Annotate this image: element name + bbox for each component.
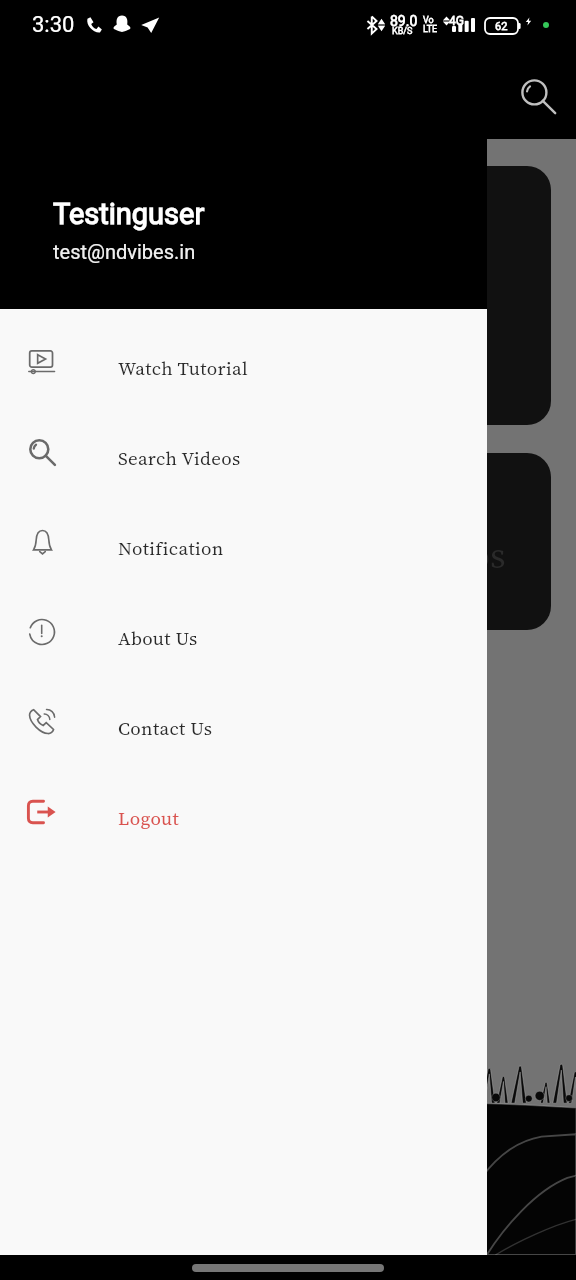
button[interactable]: About Us [0,587,487,677]
button[interactable]: Watch Tutorial [0,317,487,407]
staticText: Testinguser [53,197,205,231]
staticText: Watch Tutorial [118,355,248,381]
button[interactable]: Home [192,1264,384,1272]
staticText: Popular Videos [265,531,506,580]
staticText: KB/S [392,26,413,37]
staticText: 4G [449,14,464,28]
staticText: Contact Us [118,715,213,741]
button[interactable]: Logout [0,767,487,857]
button[interactable]: Contact Us [0,677,487,767]
staticText: 89.0 [390,13,418,29]
staticText: test@ndvibes.in [53,240,196,263]
button[interactable]: Search Videos [0,407,487,497]
staticText: Logout [118,805,180,831]
staticText: Search Videos [118,445,241,471]
staticText: 3:30 [32,12,75,38]
staticText: Vo [423,15,434,26]
staticText: About Us [118,625,198,651]
staticText: LTE [423,24,438,35]
button[interactable]: Search [512,70,564,122]
button[interactable]: Notification [0,497,487,587]
staticText: 62 [495,20,508,33]
staticText: Notification [118,535,224,561]
